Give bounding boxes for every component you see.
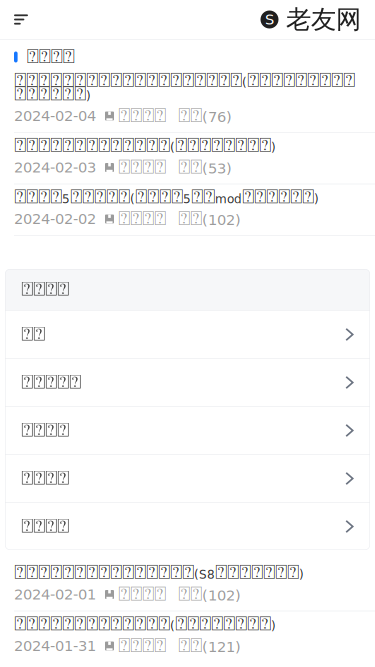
button[interactable]: ⍰⍰⍰⍰⍰⍰⍰⍰⍰⍰⍰⍰⍰(⍰⍰⍰⍰⍰⍰⍰⍰) bbox=[0, 611, 375, 662]
staticText: ⍰⍰⍰⍰⍰⍰⍰⍰⍰⍰⍰⍰⍰⍰⍰(S8⍰⍰⍰⍰⍰⍰⍰) bbox=[14, 563, 304, 582]
staticText: ⍰⍰ bbox=[21, 324, 45, 344]
button[interactable]: Menu bbox=[0, 0, 40, 39]
staticText: ⍰⍰⍰⍰ bbox=[118, 157, 166, 177]
staticText: ⍰⍰⍰⍰ bbox=[118, 636, 166, 656]
staticText: ⍰⍰⍰⍰ bbox=[118, 209, 166, 229]
staticText: ⍰⍰⍰⍰⍰ bbox=[21, 372, 81, 392]
button[interactable]: ⍰⍰⍰⍰ bbox=[5, 406, 370, 454]
staticText: ⍰⍰(121) bbox=[178, 636, 241, 656]
button[interactable]: ⍰⍰⍰⍰⍰⍰⍰⍰⍰⍰⍰⍰⍰(⍰⍰⍰⍰⍰⍰⍰⍰) bbox=[0, 133, 375, 183]
button[interactable]: ⍰⍰⍰⍰⍰⍰⍰⍰⍰⍰⍰⍰⍰⍰⍰(S8⍰⍰⍰⍰⍰⍰⍰) bbox=[0, 560, 375, 610]
staticText: 2024-02-03 bbox=[14, 159, 96, 176]
staticText: ⍰⍰⍰⍰ bbox=[27, 47, 75, 67]
staticText: ⍰⍰⍰⍰ bbox=[21, 279, 69, 299]
staticText: 2024-01-31 bbox=[14, 637, 96, 655]
staticText: S bbox=[265, 11, 274, 28]
staticText: ⍰⍰(102) bbox=[178, 585, 241, 604]
staticText: ⍰⍰⍰⍰ bbox=[21, 468, 69, 488]
staticText: ⍰⍰⍰⍰⍰⍰⍰⍰⍰⍰⍰⍰⍰⍰⍰⍰⍰⍰⍰(⍰⍰⍰⍰⍰⍰⍰⍰⍰⍰⍰⍰⍰⍰⍰) bbox=[14, 71, 355, 104]
button[interactable]: ⍰⍰⍰⍰ bbox=[5, 502, 370, 550]
button[interactable]: Laoyou Net bbox=[259, 0, 375, 39]
staticText: 2024-02-04 bbox=[14, 107, 96, 125]
button[interactable]: ⍰⍰⍰⍰ bbox=[5, 454, 370, 502]
staticText: ⍰⍰⍰⍰ bbox=[118, 584, 166, 604]
button[interactable]: ⍰⍰⍰⍰⍰ bbox=[5, 358, 370, 406]
staticText: ⍰⍰⍰⍰⍰⍰⍰⍰⍰⍰⍰⍰⍰(⍰⍰⍰⍰⍰⍰⍰⍰) bbox=[14, 614, 276, 634]
staticText: ⍰⍰(102) bbox=[178, 209, 241, 229]
staticText: ⍰⍰⍰⍰5⍰⍰⍰⍰⍰(⍰⍰⍰⍰5⍰⍰mod⍰⍰⍰⍰⍰⍰) bbox=[14, 187, 319, 207]
staticText: ⍰⍰(76) bbox=[178, 106, 232, 126]
staticText: 2024-02-02 bbox=[14, 210, 96, 228]
button[interactable]: ⍰⍰ bbox=[5, 310, 370, 358]
button[interactable]: ⍰⍰⍰⍰5⍰⍰⍰⍰⍰(⍰⍰⍰⍰5⍰⍰mod⍰⍰⍰⍰⍰⍰) bbox=[0, 184, 375, 235]
staticText: ⍰⍰⍰⍰ bbox=[118, 106, 166, 126]
staticText: ⍰⍰(53) bbox=[178, 158, 232, 177]
staticText: ⍰⍰⍰⍰ bbox=[21, 516, 69, 536]
staticText: ⍰⍰⍰⍰⍰⍰⍰⍰⍰⍰⍰⍰⍰(⍰⍰⍰⍰⍰⍰⍰⍰) bbox=[14, 136, 276, 155]
staticText: 2024-02-01 bbox=[14, 586, 96, 603]
staticText: ⍰⍰⍰⍰ bbox=[21, 420, 69, 440]
button[interactable]: ⍰⍰⍰⍰⍰⍰⍰⍰⍰⍰⍰⍰⍰⍰⍰⍰⍰⍰⍰(⍰⍰⍰⍰⍰⍰⍰⍰⍰⍰⍰⍰⍰⍰⍰) bbox=[0, 68, 375, 132]
staticText: 老友网 bbox=[286, 3, 361, 35]
